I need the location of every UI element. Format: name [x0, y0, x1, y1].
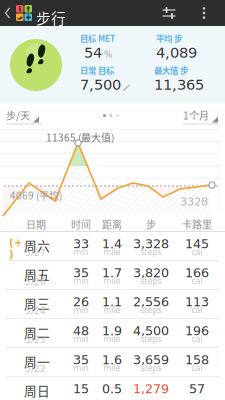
staticText: 11365 (最大值) — [46, 130, 114, 144]
staticText: 距离 — [102, 217, 122, 231]
staticText: 日常 目标 — [80, 64, 114, 76]
staticText: % — [104, 50, 112, 60]
staticText: 3,659 — [133, 352, 169, 367]
staticText: 周五 — [24, 265, 50, 283]
staticText: 48 — [73, 323, 89, 338]
button[interactable]: (+) — [0, 232, 225, 261]
staticText: 周三 — [24, 294, 50, 312]
staticText: 5/24 — [25, 306, 46, 316]
button[interactable]: 周日 — [0, 377, 225, 400]
staticText: 时间 — [71, 217, 91, 231]
staticText: 7,500 — [80, 76, 121, 93]
staticText: 4,500 — [133, 323, 169, 338]
staticText: 1.1 — [102, 294, 122, 309]
staticText: cal — [191, 276, 202, 286]
staticText: 26 — [73, 294, 89, 309]
button[interactable]: 周一 — [0, 348, 225, 377]
staticText: 2,556 — [133, 294, 169, 309]
staticText: 4,089 — [156, 44, 197, 61]
staticText: 周六 — [24, 236, 50, 254]
staticText: 1,279 — [133, 381, 169, 396]
staticText: 15 — [73, 381, 89, 396]
staticText: mile — [103, 334, 120, 344]
staticText: min — [73, 276, 88, 286]
staticText: steps — [140, 334, 161, 344]
staticText: steps — [140, 247, 161, 257]
staticText: min — [73, 247, 88, 257]
staticText: 35 — [73, 352, 89, 367]
button[interactable]: More options — [193, 0, 215, 26]
staticText: 卡路里 — [182, 217, 212, 231]
staticText: 日期 — [26, 217, 46, 231]
staticText: 35 — [73, 265, 89, 280]
staticText: 57 — [189, 381, 205, 396]
staticText: 166 — [185, 265, 209, 280]
staticText: 0.5 — [102, 381, 122, 396]
staticText: 196 — [185, 323, 209, 338]
staticText: 4069 (平均) — [10, 188, 62, 202]
button[interactable]: Back — [0, 0, 16, 26]
button[interactable]: 周二 — [0, 319, 225, 348]
staticText: cal — [191, 305, 202, 315]
staticText: 3328 — [180, 195, 208, 208]
staticText: cal — [191, 334, 202, 344]
staticText: mile — [103, 247, 120, 257]
staticText: 54 — [84, 44, 102, 61]
staticText: steps — [140, 305, 161, 315]
staticText: 周日 — [24, 381, 50, 399]
staticText: 158 — [185, 352, 209, 367]
staticText: min — [73, 334, 88, 344]
staticText: 5/27 — [25, 248, 46, 258]
staticText: 步 — [146, 217, 156, 231]
staticText: mile — [103, 305, 120, 315]
staticText: 1.7 — [102, 265, 122, 280]
staticText: 33 — [73, 236, 89, 251]
staticText: 1.9 — [102, 323, 122, 338]
button[interactable]: 周三 — [0, 290, 225, 319]
staticText: 145 — [185, 236, 209, 251]
staticText: 1个月 — [183, 108, 209, 122]
staticText: mile — [103, 363, 120, 373]
staticText: 5/26 — [25, 277, 46, 287]
staticText: 5/23 — [25, 335, 46, 345]
staticText: 3,328 — [133, 236, 169, 251]
button[interactable]: 1个月 — [183, 108, 219, 124]
staticText: mile — [103, 276, 120, 286]
staticText: (+) — [9, 237, 22, 260]
staticText: 目标 MET — [80, 32, 115, 44]
staticText: steps — [140, 276, 161, 286]
staticText: 113 — [185, 294, 209, 309]
staticText: cal — [191, 363, 202, 373]
staticText: 1.4 — [102, 236, 122, 251]
staticText: 1.6 — [102, 352, 122, 367]
staticText: 步/天 — [6, 108, 30, 122]
staticText: steps — [140, 363, 161, 373]
button[interactable]: Filter — [157, 0, 181, 26]
staticText: 5/22 — [25, 364, 46, 374]
staticText: 最大值 步 — [154, 64, 188, 76]
button[interactable]: 周五 — [0, 261, 225, 290]
staticText: 周二 — [24, 323, 50, 341]
staticText: min — [73, 305, 88, 315]
staticText: 周一 — [24, 352, 50, 370]
button[interactable]: 步/天 — [6, 108, 42, 124]
staticText: 步行 — [36, 7, 66, 28]
staticText: 11,365 — [154, 76, 204, 93]
staticText: cal — [191, 247, 202, 257]
staticText: 平均 步 — [156, 32, 182, 44]
staticText: min — [73, 363, 88, 373]
staticText: 3,820 — [133, 265, 169, 280]
